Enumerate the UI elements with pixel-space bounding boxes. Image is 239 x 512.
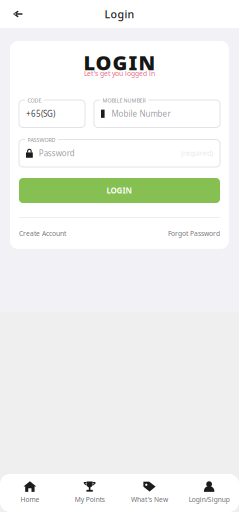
button[interactable]: Home xyxy=(0,470,60,512)
button[interactable]: LOGIN xyxy=(19,178,220,203)
button[interactable]: My Points xyxy=(60,470,120,512)
button[interactable]: Create Account xyxy=(19,229,66,238)
staticText: PASSWORD xyxy=(27,136,55,144)
staticText: My Points xyxy=(75,495,105,504)
staticText: What's New xyxy=(131,495,168,504)
staticText: MOBILE NUMBER xyxy=(102,97,145,104)
button[interactable]: What's New xyxy=(119,470,179,512)
button[interactable]: Login/Signup xyxy=(179,470,239,512)
staticText: CODE xyxy=(27,97,41,104)
staticText: Mobile Number xyxy=(112,108,171,119)
staticText: LOGIN xyxy=(83,49,155,76)
staticText: Password xyxy=(39,148,75,158)
staticText: Login xyxy=(104,7,134,21)
staticText: LOGIN xyxy=(106,185,132,196)
staticText: Create Account xyxy=(19,229,66,238)
button[interactable]: Back xyxy=(0,0,31,28)
staticText: Login/Signup xyxy=(189,495,230,504)
button[interactable]: Forgot Password xyxy=(168,229,220,238)
staticText: (required) xyxy=(181,149,213,158)
staticText: Forgot Password xyxy=(168,229,220,238)
staticText: Let's get you logged in xyxy=(84,69,155,78)
staticText: Home xyxy=(20,495,39,504)
staticText: +65(SG) xyxy=(26,108,55,119)
